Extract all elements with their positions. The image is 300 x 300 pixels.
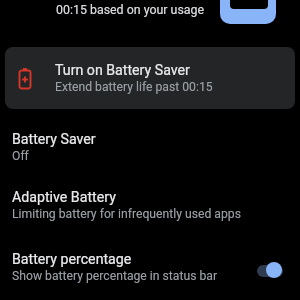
button[interactable] [257, 265, 283, 277]
staticText: Turn on Battery Saver [55, 62, 190, 79]
button[interactable]: Adaptive Battery [0, 179, 300, 237]
staticText: Off [12, 149, 29, 163]
button[interactable]: Battery Saver [0, 121, 300, 179]
button[interactable]: Battery percentage [0, 243, 300, 300]
staticText: 00:15 based on your usage [56, 2, 205, 17]
staticText: Adaptive Battery [12, 189, 116, 206]
staticText: Extend battery life past 00:15 [55, 80, 213, 94]
staticText: Battery percentage [12, 251, 132, 268]
staticText: Battery Saver [12, 131, 96, 148]
staticText: Limiting battery for infrequently used a… [12, 207, 241, 221]
button[interactable]: Turn on Battery Saver [5, 47, 295, 109]
staticText: Show battery percentage in status bar [12, 269, 218, 283]
